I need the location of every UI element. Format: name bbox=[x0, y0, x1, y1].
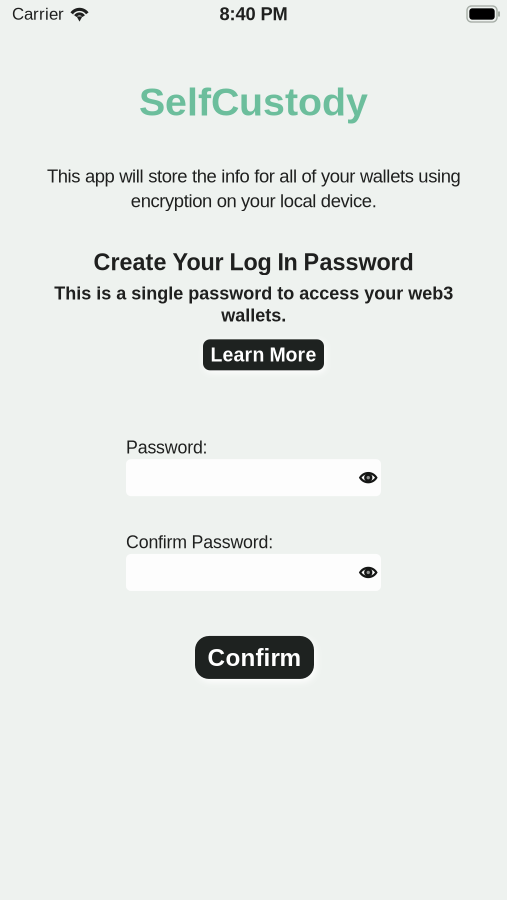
staticText: SelfCustody bbox=[139, 80, 368, 124]
staticText: 8:40 PM bbox=[219, 4, 287, 24]
staticText: This app will store the info for all of … bbox=[47, 166, 460, 211]
staticText: Confirm bbox=[207, 644, 301, 671]
staticText: This is a single password to access your… bbox=[54, 283, 453, 325]
button[interactable]: Confirm bbox=[195, 636, 314, 679]
button[interactable]: Show password bbox=[349, 461, 381, 495]
staticText: Carrier bbox=[12, 5, 64, 23]
staticText: Create Your Log In Password bbox=[93, 249, 413, 275]
staticText: Learn More bbox=[210, 344, 316, 366]
staticText: Confirm Password: bbox=[126, 532, 273, 552]
staticText: Password: bbox=[126, 437, 208, 457]
button[interactable]: Show confirm password bbox=[349, 555, 381, 589]
button[interactable]: Learn More bbox=[203, 339, 324, 370]
